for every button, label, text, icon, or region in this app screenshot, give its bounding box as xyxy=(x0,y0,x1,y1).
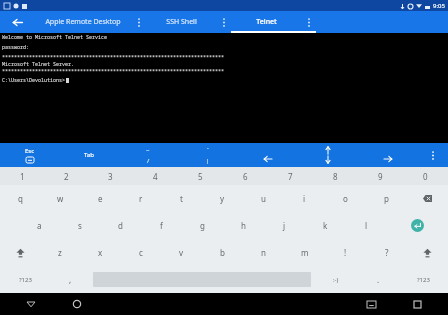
button[interactable]: Enter xyxy=(387,212,448,239)
button[interactable]: m xyxy=(284,239,325,266)
staticText: 9:05 xyxy=(433,2,445,10)
staticText: Tab xyxy=(84,151,94,159)
button[interactable]: h xyxy=(223,212,264,239)
staticText: d xyxy=(118,220,123,231)
button[interactable]: o xyxy=(325,185,366,212)
button[interactable]: e xyxy=(80,185,120,212)
staticText: | xyxy=(206,157,210,165)
staticText: m xyxy=(301,247,309,258)
button[interactable]: SSH Shell xyxy=(146,11,231,33)
staticText: ? xyxy=(385,247,389,258)
button[interactable]: Arrow left xyxy=(238,143,298,167)
button[interactable]: k xyxy=(305,212,346,239)
button[interactable]: 2 xyxy=(44,167,88,185)
button[interactable]: Shift xyxy=(0,239,40,266)
button[interactable]: , xyxy=(50,266,91,293)
staticText: l xyxy=(365,220,368,231)
button[interactable]: Recent apps xyxy=(408,295,426,313)
staticText: ****************************************… xyxy=(2,54,225,61)
button[interactable]: ? xyxy=(366,239,407,266)
button[interactable]: ~ xyxy=(118,143,178,167)
staticText: u xyxy=(261,193,266,204)
button[interactable]: Home xyxy=(68,295,86,313)
staticText: w xyxy=(57,193,64,204)
staticText: password: xyxy=(2,44,30,51)
button[interactable]: q xyxy=(0,185,40,212)
button[interactable]: Apple Remote Desktop xyxy=(34,11,146,33)
button[interactable]: ! xyxy=(325,239,366,266)
button[interactable]: :-) xyxy=(313,266,358,293)
button[interactable]: More options xyxy=(302,11,316,33)
button[interactable]: 8 xyxy=(313,167,358,185)
button[interactable]: j xyxy=(264,212,305,239)
button[interactable]: 0 xyxy=(403,167,448,185)
staticText: ! xyxy=(344,247,347,258)
staticText: 2 xyxy=(64,171,69,182)
button[interactable]: ?123 xyxy=(0,266,50,293)
button[interactable]: 7 xyxy=(268,167,313,185)
button[interactable]: z xyxy=(40,239,80,266)
staticText: t xyxy=(180,193,183,204)
button[interactable]: v xyxy=(161,239,202,266)
button[interactable]: p xyxy=(366,185,407,212)
button[interactable]: c xyxy=(120,239,161,266)
button[interactable]: x xyxy=(80,239,120,266)
button[interactable]: i xyxy=(284,185,325,212)
button[interactable]: 1 xyxy=(0,167,44,185)
button[interactable]: f xyxy=(141,212,182,239)
staticText: x xyxy=(98,247,103,258)
staticText: 9 xyxy=(378,171,383,182)
button[interactable]: l xyxy=(346,212,387,239)
staticText: Welcome to Microsoft Telnet Service xyxy=(2,34,108,41)
staticText: h xyxy=(241,220,246,231)
button[interactable]: s xyxy=(59,212,100,239)
button[interactable]: Arrow up and down xyxy=(298,143,358,167)
button[interactable]: 4 xyxy=(133,167,178,185)
button[interactable]: t xyxy=(161,185,202,212)
button[interactable]: u xyxy=(243,185,284,212)
button[interactable]: Back xyxy=(22,295,40,313)
button[interactable]: Esc xyxy=(0,143,59,167)
button[interactable]: Backspace xyxy=(407,185,448,212)
staticText: s xyxy=(78,220,82,231)
button[interactable]: Back xyxy=(0,11,34,33)
button[interactable]: Arrow right xyxy=(358,143,418,167)
staticText: 8 xyxy=(333,171,338,182)
staticText: Telnet xyxy=(256,17,277,27)
staticText: 6 xyxy=(243,171,248,182)
button[interactable]: More options xyxy=(132,11,146,33)
staticText: ****************************************… xyxy=(2,68,225,75)
button[interactable]: 6 xyxy=(223,167,268,185)
button[interactable]: ?123 xyxy=(399,266,448,293)
button[interactable]: Telnet xyxy=(231,11,316,33)
staticText: 7 xyxy=(288,171,293,182)
button[interactable]: 5 xyxy=(178,167,223,185)
button[interactable]: Tab xyxy=(59,143,118,167)
button[interactable]: w xyxy=(40,185,80,212)
staticText: Esc xyxy=(25,147,35,155)
staticText: k xyxy=(323,220,328,231)
staticText: ?123 xyxy=(417,276,430,284)
button[interactable]: y xyxy=(202,185,243,212)
button[interactable]: b xyxy=(202,239,243,266)
button[interactable]: g xyxy=(182,212,223,239)
button[interactable]: n xyxy=(243,239,284,266)
button[interactable]: r xyxy=(120,185,161,212)
button[interactable]: More options xyxy=(418,143,448,167)
button[interactable]: Hide keyboard xyxy=(362,295,380,313)
staticText: 5 xyxy=(198,171,203,182)
staticText: c xyxy=(139,247,143,258)
button[interactable]: 3 xyxy=(88,167,133,185)
button[interactable]: 9 xyxy=(358,167,403,185)
button[interactable]: Shift xyxy=(407,239,448,266)
button[interactable]: a xyxy=(19,212,59,239)
button[interactable]: d xyxy=(100,212,141,239)
staticText: f xyxy=(160,220,163,231)
staticText: / xyxy=(147,157,150,165)
staticText: :-) xyxy=(333,276,339,284)
button[interactable]: More options xyxy=(217,11,231,33)
staticText: 4 xyxy=(153,171,158,182)
button[interactable]: ` xyxy=(178,143,238,167)
